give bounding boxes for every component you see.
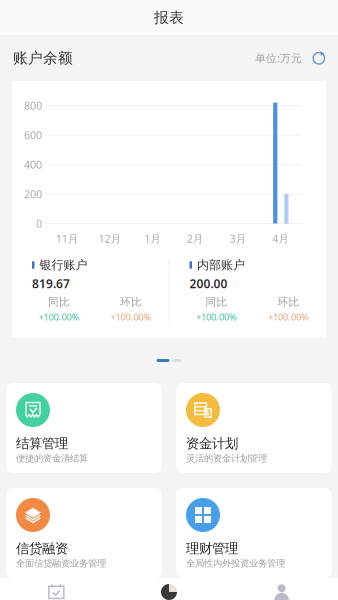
staticText: 4月 bbox=[272, 231, 289, 246]
button[interactable]: 结算管理 bbox=[6, 383, 162, 473]
staticText: 200 bbox=[24, 187, 42, 201]
staticText: +100.00% bbox=[38, 311, 79, 323]
staticText: +100.00% bbox=[268, 311, 309, 323]
staticText: 2月 bbox=[187, 231, 204, 246]
button[interactable]: 资金计划 bbox=[176, 383, 332, 473]
staticText: 账户余额 bbox=[13, 49, 73, 67]
staticText: 400 bbox=[24, 157, 42, 172]
staticText: 内部账户 bbox=[197, 258, 245, 272]
staticText: 环比 bbox=[277, 295, 299, 308]
button[interactable]: 我的 bbox=[225, 578, 338, 600]
staticText: 200.00 bbox=[189, 275, 227, 291]
staticText: 同比 bbox=[205, 295, 227, 308]
staticText: +100.00% bbox=[110, 311, 151, 323]
staticText: 12月 bbox=[98, 231, 121, 246]
button[interactable]: 待办 bbox=[0, 578, 113, 600]
staticText: 11月 bbox=[56, 231, 79, 246]
staticText: 环比 bbox=[120, 295, 142, 308]
staticText: +100.00% bbox=[196, 311, 237, 323]
staticText: 3月 bbox=[229, 231, 246, 246]
staticText: 灵活的资金计划管理 bbox=[186, 453, 267, 464]
staticText: 1月 bbox=[144, 231, 161, 246]
button[interactable]: 刷新 bbox=[302, 47, 328, 69]
button[interactable]: 信贷融资 bbox=[6, 488, 162, 578]
staticText: 银行账户 bbox=[39, 258, 87, 272]
staticText: 报表 bbox=[154, 8, 184, 26]
staticText: 0 bbox=[36, 216, 42, 231]
staticText: 便捷的资金清结算 bbox=[16, 453, 88, 464]
staticText: 资金计划 bbox=[186, 435, 238, 452]
staticText: 800 bbox=[24, 98, 42, 113]
staticText: 全面信贷融资业务管理 bbox=[16, 558, 106, 569]
staticText: 819.67 bbox=[32, 275, 70, 291]
staticText: 理财管理 bbox=[186, 540, 238, 557]
button[interactable]: 报表 bbox=[113, 578, 225, 600]
staticText: 单位:万元 bbox=[255, 51, 302, 65]
staticText: 结算管理 bbox=[16, 435, 68, 452]
staticText: 600 bbox=[24, 128, 42, 142]
staticText: 全局性内外投资业务管理 bbox=[186, 558, 285, 569]
staticText: 同比 bbox=[48, 295, 70, 308]
button[interactable]: 理财管理 bbox=[176, 488, 332, 578]
staticText: 信贷融资 bbox=[16, 540, 68, 557]
